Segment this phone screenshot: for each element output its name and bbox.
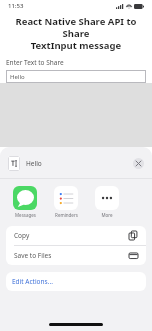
staticText: Enter Text to Share [6, 58, 64, 67]
staticText: Hello [26, 159, 42, 168]
button[interactable]: Save to Files [6, 246, 146, 265]
staticText: More [101, 212, 113, 218]
button[interactable]: Hello [6, 70, 146, 83]
staticText: Edit Actions... [12, 277, 53, 286]
staticText: Copy [14, 231, 30, 240]
button[interactable]: Edit Actions... [6, 272, 146, 291]
staticText: Hello [10, 73, 25, 81]
button[interactable]: More [92, 186, 122, 218]
staticText: Reminders [55, 212, 78, 218]
button[interactable]: Messages [10, 186, 40, 218]
staticText: 11:53 [8, 2, 24, 10]
button[interactable]: Copy [6, 226, 146, 245]
button[interactable]: Reminders [51, 186, 81, 218]
staticText: React Native Share API to Share TextInpu… [12, 15, 140, 52]
staticText: Messages [15, 212, 36, 218]
staticText: Save to Files [14, 251, 52, 260]
button[interactable]: Close [133, 158, 144, 169]
